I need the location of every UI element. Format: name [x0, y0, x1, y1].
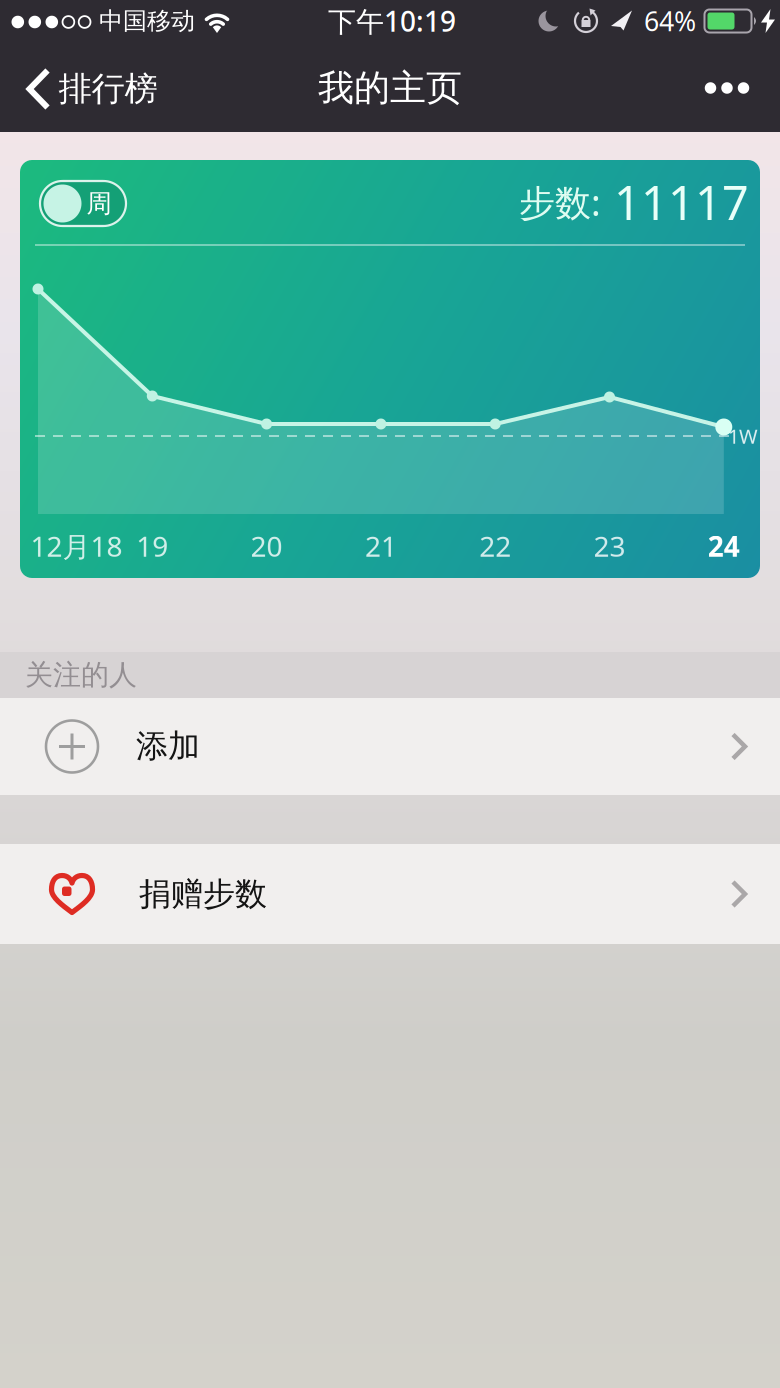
staticText: 1W [728, 423, 758, 449]
staticText: 21 [365, 527, 397, 565]
staticText: 20 [251, 527, 283, 565]
staticText: 周 [86, 188, 111, 219]
staticText: 我的主页 [318, 66, 462, 110]
button[interactable]: 添加 [0, 698, 780, 795]
staticText: 下午10:19 [328, 2, 456, 40]
staticText: 捐赠步数 [139, 874, 267, 914]
staticText: 排行榜 [58, 68, 157, 109]
staticText: 64% [644, 3, 696, 39]
staticText: 19 [136, 527, 168, 565]
staticText: 12月18 [30, 527, 122, 565]
staticText: 24 [708, 527, 740, 565]
button[interactable]: 周/月切换 [40, 181, 126, 226]
staticText: 23 [593, 527, 625, 565]
staticText: 添加 [136, 726, 200, 766]
staticText: 步数: [519, 178, 601, 226]
staticText: 中国移动 [99, 6, 195, 36]
button[interactable]: 排行榜 [26, 67, 157, 110]
staticText: 11117 [614, 171, 749, 233]
staticText: 22 [479, 527, 511, 565]
button[interactable]: 捐赠步数 [0, 844, 780, 944]
button[interactable]: 更多 [691, 60, 763, 116]
staticText: 关注的人 [25, 658, 137, 692]
